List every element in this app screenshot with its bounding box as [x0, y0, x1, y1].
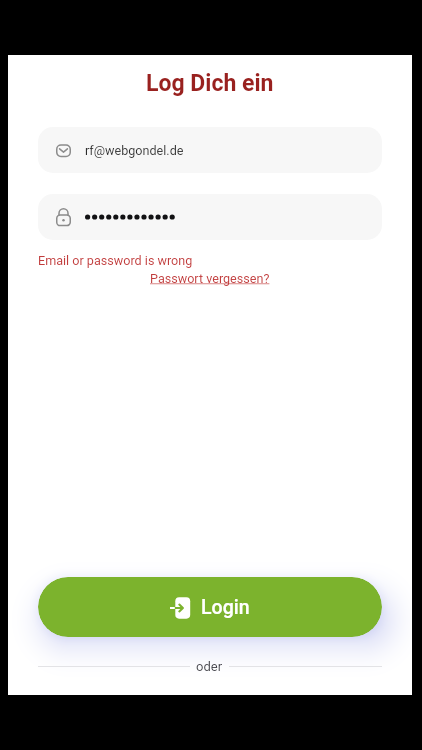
- button[interactable]: Passwort vergessen?: [150, 271, 270, 286]
- staticText: rf@webgondel.de: [85, 143, 184, 158]
- staticText: Passwort vergessen?: [150, 271, 270, 286]
- button[interactable]: rf@webgondel.de: [38, 127, 382, 173]
- staticText: Log Dich ein: [146, 70, 274, 97]
- staticText: Email or password is wrong: [38, 253, 193, 268]
- button[interactable]: [38, 194, 382, 240]
- other: Login: [170, 597, 190, 619]
- staticText: Login: [201, 596, 250, 619]
- button[interactable]: Login: [38, 577, 382, 637]
- staticText: oder: [196, 659, 223, 674]
